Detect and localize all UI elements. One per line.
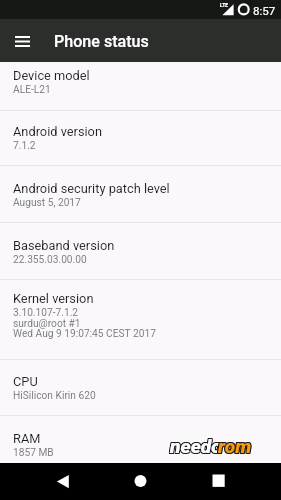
staticText: 1857 MB	[13, 447, 54, 459]
staticText: rom	[219, 435, 253, 458]
staticText: 22.355.03.00.00	[13, 254, 87, 266]
staticText: 8:57	[253, 4, 276, 18]
button[interactable]: Device model	[0, 62, 281, 110]
staticText: rom	[218, 435, 252, 458]
staticText: needo	[170, 434, 222, 457]
button[interactable]: Home	[120, 463, 160, 500]
staticText: Phone status	[54, 32, 149, 51]
staticText: needo	[169, 435, 221, 458]
staticText: needo	[171, 434, 223, 457]
staticText: rom	[218, 436, 252, 459]
button[interactable]: Android security patch level	[0, 166, 281, 222]
staticText: Kernel version	[13, 291, 94, 306]
staticText: rom	[217, 435, 251, 458]
staticText: Device model	[13, 68, 90, 83]
staticText: Android version	[13, 124, 102, 139]
staticText: Android security patch level	[13, 181, 170, 196]
staticText: rom	[218, 434, 252, 457]
button[interactable]: RAM	[0, 416, 281, 463]
staticText: rom	[217, 436, 251, 459]
staticText: LTE	[220, 2, 229, 8]
staticText: 3.10.107-7.1.2 surdu@root #1 Wed Aug 9 1…	[13, 307, 156, 339]
button[interactable]: CPU	[0, 360, 281, 415]
staticText: ALE-L21	[13, 84, 51, 96]
staticText: HiSilicon Kirin 620	[13, 390, 96, 402]
staticText: needo	[171, 435, 223, 458]
button[interactable]: Android version	[0, 111, 281, 165]
staticText: 7.1.2	[13, 140, 36, 152]
button[interactable]: Recent apps	[198, 463, 238, 500]
button[interactable]: Kernel version	[0, 280, 281, 359]
button[interactable]: Navigation menu	[8, 27, 36, 55]
staticText: needo	[170, 436, 222, 459]
staticText: needo	[170, 435, 222, 458]
button[interactable]: Back	[42, 463, 82, 500]
button[interactable]: Baseband version	[0, 223, 281, 279]
staticText: rom	[217, 434, 251, 457]
staticText: needo	[169, 436, 221, 459]
staticText: Baseband version	[13, 238, 115, 253]
staticText: rom	[219, 434, 253, 457]
staticText: needo	[171, 436, 223, 459]
staticText: rom	[219, 436, 253, 459]
staticText: CPU	[13, 374, 38, 389]
staticText: RAM	[13, 431, 41, 446]
staticText: needo	[169, 434, 221, 457]
staticText: August 5, 2017	[13, 197, 81, 209]
